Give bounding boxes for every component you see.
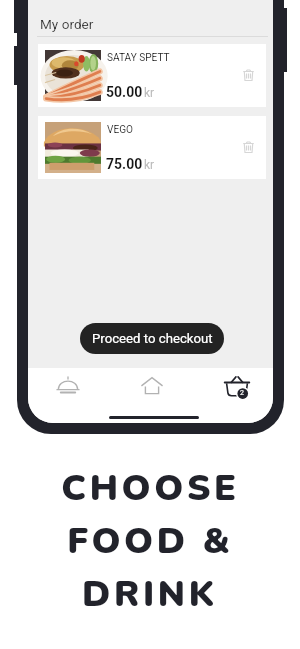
staticText: 75.00 [106,156,143,172]
button[interactable]: Proceed to checkout [80,323,224,354]
button[interactable]: Home [130,366,174,404]
staticText: FOOD & [67,517,234,566]
button[interactable]: Cart, 2 items [215,368,259,406]
staticText: 50.00 [106,84,143,100]
staticText: DRINK [82,570,218,619]
staticText: kr [144,86,155,100]
button[interactable]: Delete item [236,63,260,87]
staticText: CHOOSE [61,464,240,513]
button[interactable]: SATAY SPETT [38,44,266,107]
staticText: SATAY SPETT [107,52,170,64]
staticText: VEGO [107,124,133,136]
staticText: 2 [240,389,244,397]
staticText: My order [40,16,94,32]
button[interactable]: VEGO [38,116,266,179]
staticText: kr [144,158,155,172]
button[interactable]: Delete item [236,135,260,159]
button[interactable]: Menu [46,366,90,404]
staticText: Proceed to checkout [92,331,213,346]
